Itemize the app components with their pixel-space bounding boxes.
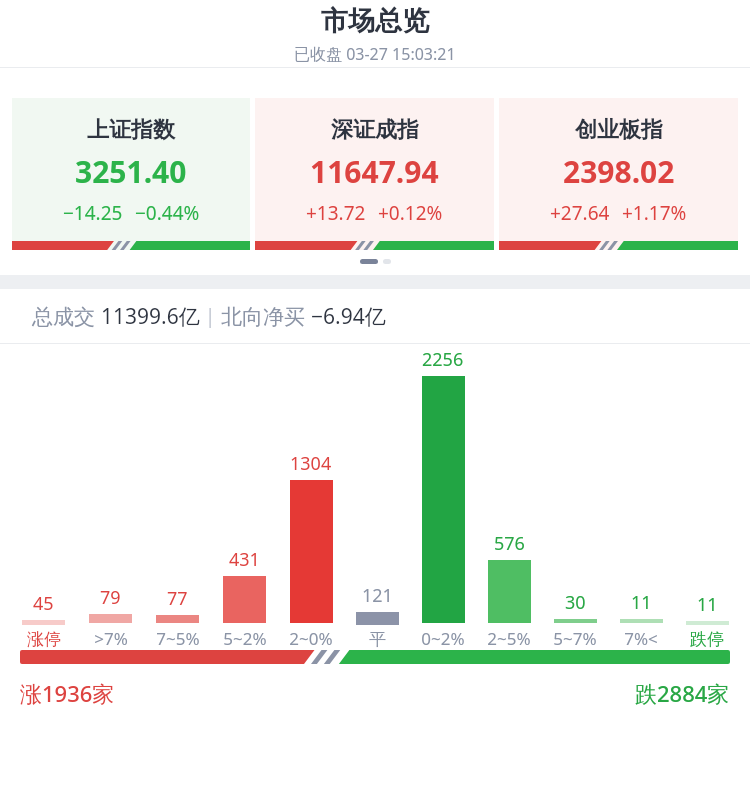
staticText: >7%	[94, 627, 128, 650]
staticText: 11399.6亿	[101, 302, 200, 331]
staticText: 576	[494, 531, 525, 556]
staticText: 跌2884家	[635, 678, 730, 708]
staticText: 2256	[422, 347, 464, 372]
button[interactable]: 79	[77, 585, 144, 650]
button[interactable]: 576	[476, 531, 542, 650]
staticText: 3251.40	[75, 151, 187, 192]
staticText: 北向净买	[221, 302, 311, 331]
staticText: 11647.94	[310, 151, 439, 192]
button[interactable]: 上证指数	[12, 98, 250, 250]
staticText: 2~5%	[487, 627, 531, 650]
button[interactable]: 2256	[410, 347, 476, 650]
staticText: 总成交	[32, 302, 101, 331]
staticText: 深证成指	[331, 116, 419, 144]
button[interactable]: 431	[211, 547, 278, 650]
staticText: 平	[369, 629, 386, 650]
staticText: +13.72	[306, 200, 366, 226]
staticText: 涨停	[27, 629, 61, 650]
staticText: +0.12%	[378, 200, 443, 226]
staticText: −14.25	[63, 200, 123, 226]
button[interactable]: 1304	[278, 451, 344, 650]
staticText: 11	[697, 592, 718, 617]
staticText: |	[200, 303, 221, 329]
button[interactable]: 45	[10, 591, 77, 650]
button[interactable]: 总成交	[0, 289, 750, 343]
staticText: 79	[100, 585, 121, 610]
staticText: 跌停	[690, 629, 724, 650]
staticText: 45	[33, 591, 54, 616]
button[interactable]: 11	[674, 592, 740, 650]
staticText: 7~5%	[156, 627, 200, 650]
staticText: −6.94亿	[311, 302, 386, 331]
button[interactable]: 11	[608, 590, 674, 650]
button[interactable]: 121	[344, 583, 410, 650]
button[interactable]: 深证成指	[255, 98, 494, 250]
button[interactable]: 创业板指	[499, 98, 738, 250]
staticText: 创业板指	[575, 116, 663, 144]
staticText: 市场总览	[321, 4, 429, 38]
staticText: 2~0%	[289, 627, 333, 650]
staticText: 1304	[290, 451, 332, 476]
staticText: 涨1936家	[20, 678, 115, 708]
staticText: 121	[362, 583, 393, 608]
staticText: 431	[229, 547, 260, 572]
staticText: 30	[565, 590, 586, 615]
staticText: 77	[167, 586, 188, 611]
staticText: 5~2%	[223, 627, 267, 650]
staticText: +1.17%	[622, 200, 687, 226]
staticText: 2398.02	[563, 151, 675, 192]
staticText: −0.44%	[135, 200, 200, 226]
staticText: 已收盘 03-27 15:03:21	[294, 43, 456, 65]
staticText: +27.64	[550, 200, 610, 226]
staticText: 0~2%	[421, 627, 465, 650]
staticText: 上证指数	[87, 116, 175, 144]
staticText: 11	[631, 590, 652, 615]
staticText: 5~7%	[553, 627, 597, 650]
button[interactable]: 30	[542, 590, 608, 650]
staticText: 7%<	[624, 627, 658, 650]
button[interactable]: 77	[144, 586, 211, 650]
